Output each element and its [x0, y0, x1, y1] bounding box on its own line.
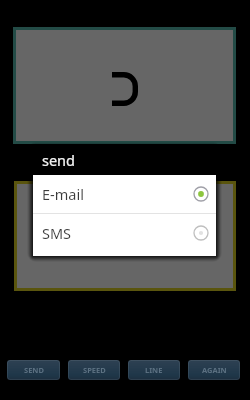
- staticText: E-mail: [42, 184, 84, 204]
- button[interactable]: LINE: [128, 360, 180, 380]
- button[interactable]: E-mail: [33, 175, 216, 213]
- button[interactable]: SEND: [7, 360, 60, 380]
- staticText: LINE: [145, 365, 163, 375]
- staticText: send: [42, 150, 76, 170]
- button[interactable]: SPEED: [68, 360, 120, 380]
- staticText: AGAIN: [202, 365, 227, 375]
- staticText: SMS: [42, 223, 72, 243]
- button[interactable]: AGAIN: [188, 360, 240, 380]
- button[interactable]: SMS: [33, 214, 216, 252]
- staticText: SPEED: [83, 365, 106, 375]
- staticText: SEND: [24, 365, 44, 375]
